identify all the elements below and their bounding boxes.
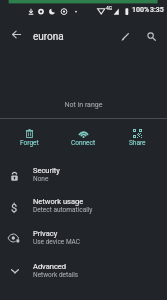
button[interactable]: Search (139, 24, 163, 48)
button[interactable]: Privacy (0, 222, 167, 252)
button[interactable]: Edit (113, 24, 137, 48)
staticText: eurona (33, 31, 64, 43)
staticText: Advanced (33, 262, 67, 271)
staticText: Connect (71, 139, 96, 147)
staticText: 4G (106, 5, 113, 11)
button[interactable]: Back (4, 22, 28, 46)
staticText: Share (129, 139, 146, 147)
staticText: Not in range (0, 101, 167, 109)
staticText: 100% (132, 6, 150, 14)
staticText: $ (11, 202, 18, 214)
button[interactable]: Connect (56, 124, 110, 147)
staticText: Network usage (33, 197, 84, 206)
staticText: Forget (20, 139, 39, 147)
staticText: Use device MAC (33, 238, 81, 246)
button[interactable]: Security (0, 159, 167, 189)
staticText: Privacy (33, 229, 58, 238)
staticText: Network details (33, 271, 79, 279)
button[interactable]: Advanced (0, 255, 167, 285)
staticText: None (33, 175, 49, 183)
button[interactable]: Share (110, 124, 164, 147)
staticText: Detect automatically (33, 206, 93, 214)
staticText: 3:35 (150, 6, 164, 14)
button[interactable]: Forget (3, 124, 56, 147)
staticText: Security (33, 166, 60, 175)
button[interactable]: $ (0, 190, 167, 220)
